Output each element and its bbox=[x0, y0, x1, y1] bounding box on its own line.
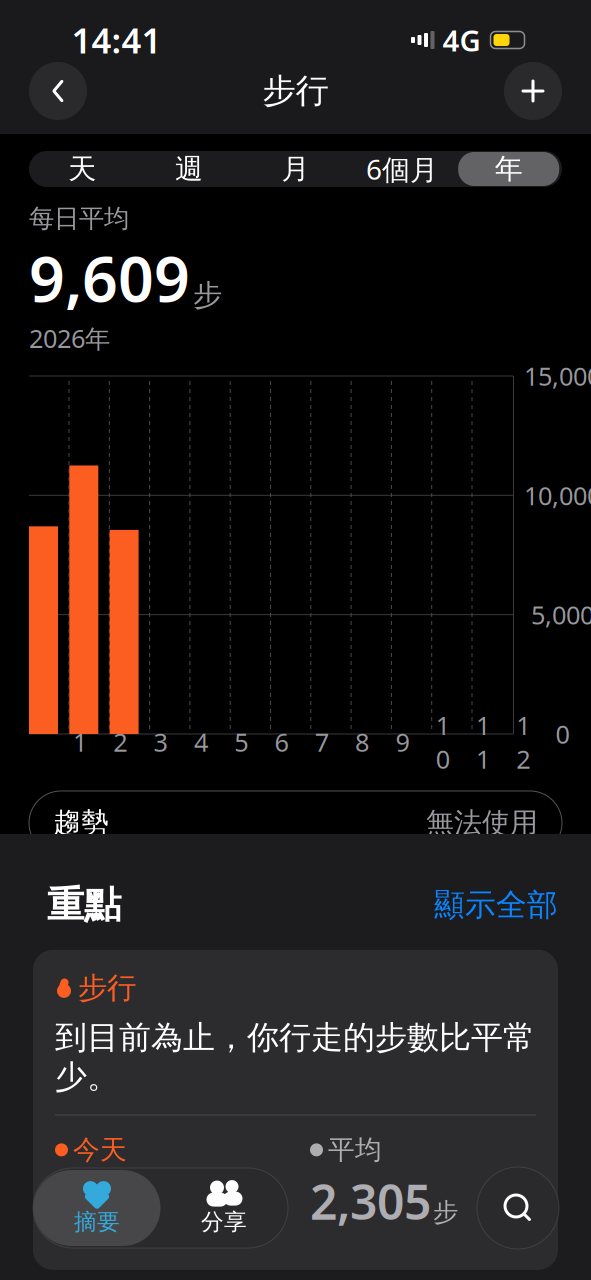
staticText: 4 bbox=[194, 725, 208, 759]
staticText: 2,305 bbox=[310, 1169, 431, 1233]
staticText: 到目前為止，你行走的步數比平常少。 bbox=[55, 1018, 535, 1096]
staticText: 分享 bbox=[201, 1208, 247, 1236]
staticText: 15,000 bbox=[524, 359, 591, 393]
staticText: 平均 bbox=[328, 1133, 382, 1166]
staticText: 14:41 bbox=[71, 17, 161, 63]
staticText: 3 bbox=[154, 725, 168, 759]
staticText: 無法使用 bbox=[426, 806, 538, 840]
staticText: 9 bbox=[395, 725, 409, 759]
staticText: 年 bbox=[495, 152, 523, 186]
staticText: 4G bbox=[434, 20, 488, 59]
staticText: 9,609 bbox=[29, 236, 190, 319]
staticText: 6個月 bbox=[366, 150, 438, 188]
staticText: 2026年 bbox=[29, 321, 110, 355]
staticText: 週 bbox=[175, 152, 203, 186]
staticText: 每日平均 bbox=[29, 203, 129, 234]
staticText: 步 bbox=[433, 1197, 458, 1228]
button[interactable]: 摘要 bbox=[33, 1170, 160, 1246]
staticText: 12 bbox=[516, 708, 530, 776]
button[interactable]: 趨勢 bbox=[29, 791, 562, 855]
staticText: 7 bbox=[315, 725, 329, 759]
staticText: 8 bbox=[355, 725, 369, 759]
staticText: 2 bbox=[113, 725, 127, 759]
staticText: 重點 bbox=[47, 882, 121, 928]
staticText: 6 bbox=[274, 725, 288, 759]
button[interactable]: 週 bbox=[136, 151, 242, 187]
staticText: 步行 bbox=[262, 70, 328, 111]
staticText: 步行 bbox=[78, 970, 136, 1006]
staticText: 0 bbox=[555, 717, 569, 751]
button[interactable]: 加入資料 bbox=[504, 62, 562, 120]
staticText: 今天 bbox=[73, 1133, 127, 1166]
staticText: 2,049 bbox=[55, 1169, 176, 1233]
button[interactable]: 顯示全部 bbox=[434, 886, 558, 924]
button[interactable]: 分享 bbox=[160, 1170, 287, 1246]
button[interactable]: 年 bbox=[455, 151, 562, 187]
button[interactable]: 步行 bbox=[33, 950, 558, 1270]
staticText: 月 bbox=[281, 152, 309, 186]
button[interactable]: 返回 bbox=[29, 62, 87, 120]
button[interactable]: 6個月 bbox=[349, 151, 455, 187]
staticText: 5,000 bbox=[531, 598, 591, 631]
staticText: 11 bbox=[476, 708, 490, 776]
staticText: 摘要 bbox=[74, 1208, 120, 1236]
staticText: 1 bbox=[73, 725, 87, 759]
staticText: 顯示全部 bbox=[434, 886, 558, 924]
staticText: 天 bbox=[68, 152, 96, 186]
button[interactable]: 搜尋 bbox=[477, 1167, 559, 1249]
staticText: 步 bbox=[178, 1197, 203, 1228]
staticText: 趨勢 bbox=[53, 806, 109, 840]
button[interactable]: 月 bbox=[242, 151, 349, 187]
staticText: 10 bbox=[436, 708, 450, 776]
button[interactable]: 天 bbox=[29, 151, 136, 187]
staticText: 10,000 bbox=[524, 478, 591, 512]
staticText: 步 bbox=[193, 277, 222, 313]
staticText: 5 bbox=[234, 725, 248, 759]
